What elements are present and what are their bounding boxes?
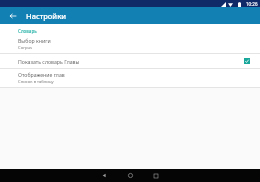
- staticText: 10:26: [246, 1, 258, 7]
- button[interactable]: Отображение глав: [0, 69, 260, 87]
- button[interactable]: Выбор книги: [0, 35, 260, 53]
- button[interactable]: Recent apps: [143, 169, 169, 182]
- button[interactable]: Home: [117, 169, 143, 182]
- staticText: Список в таблицу: [18, 79, 54, 85]
- staticText: Показать словарь Главы: [18, 58, 80, 65]
- staticText: Выбор книги: [18, 37, 51, 44]
- staticText: Отображение глав: [18, 71, 65, 78]
- button[interactable]: Показать словарь Главы: [0, 54, 260, 68]
- staticText: Corpus: [18, 45, 33, 51]
- staticText: Настройки: [26, 11, 67, 21]
- button[interactable]: Back: [91, 169, 117, 182]
- button[interactable]: Back: [6, 9, 19, 22]
- button[interactable]: Toggle show chapter dictionary: [242, 56, 252, 66]
- staticText: Словарь: [18, 28, 37, 34]
